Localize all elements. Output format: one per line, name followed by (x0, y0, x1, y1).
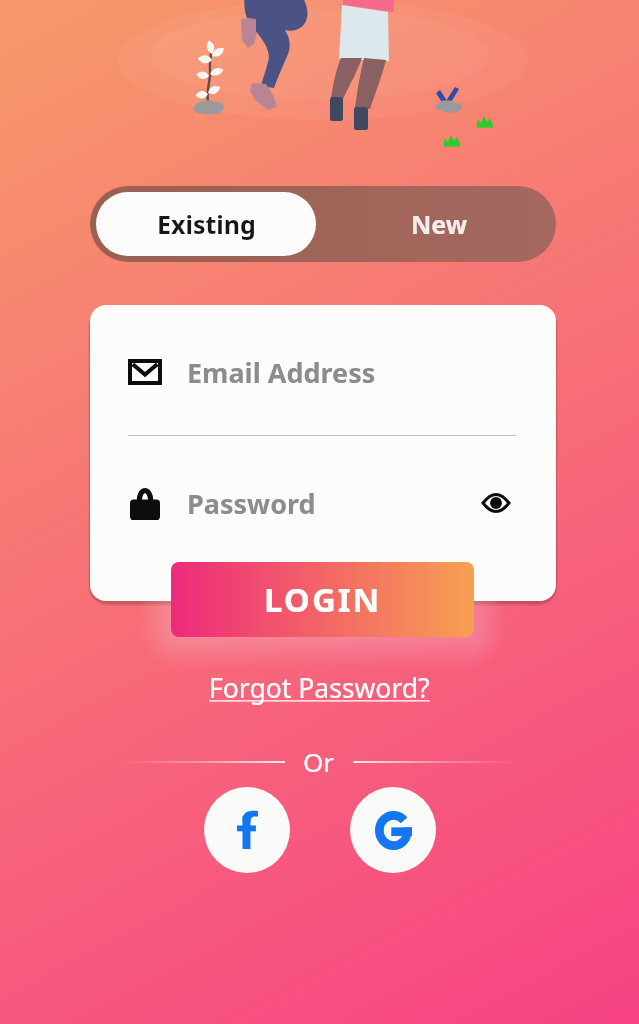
button[interactable]: Existing (96, 192, 316, 256)
staticText: Password (187, 485, 316, 522)
staticText: Forgot Password? (209, 670, 430, 706)
button[interactable]: LOGIN (171, 562, 474, 637)
button[interactable]: New (322, 186, 556, 262)
button[interactable]: Show password (470, 477, 522, 529)
button[interactable]: Sign in with Facebook (204, 787, 290, 873)
button[interactable]: Password (90, 470, 556, 536)
staticText: LOGIN (264, 577, 382, 622)
button[interactable]: Sign in with Google (350, 787, 436, 873)
button[interactable]: Forgot Password? (203, 666, 436, 710)
staticText: Existing (157, 207, 256, 241)
staticText: New (411, 207, 468, 241)
staticText: Email Address (187, 354, 376, 391)
button[interactable]: Email Address (90, 339, 556, 405)
staticText: Or (303, 744, 335, 779)
